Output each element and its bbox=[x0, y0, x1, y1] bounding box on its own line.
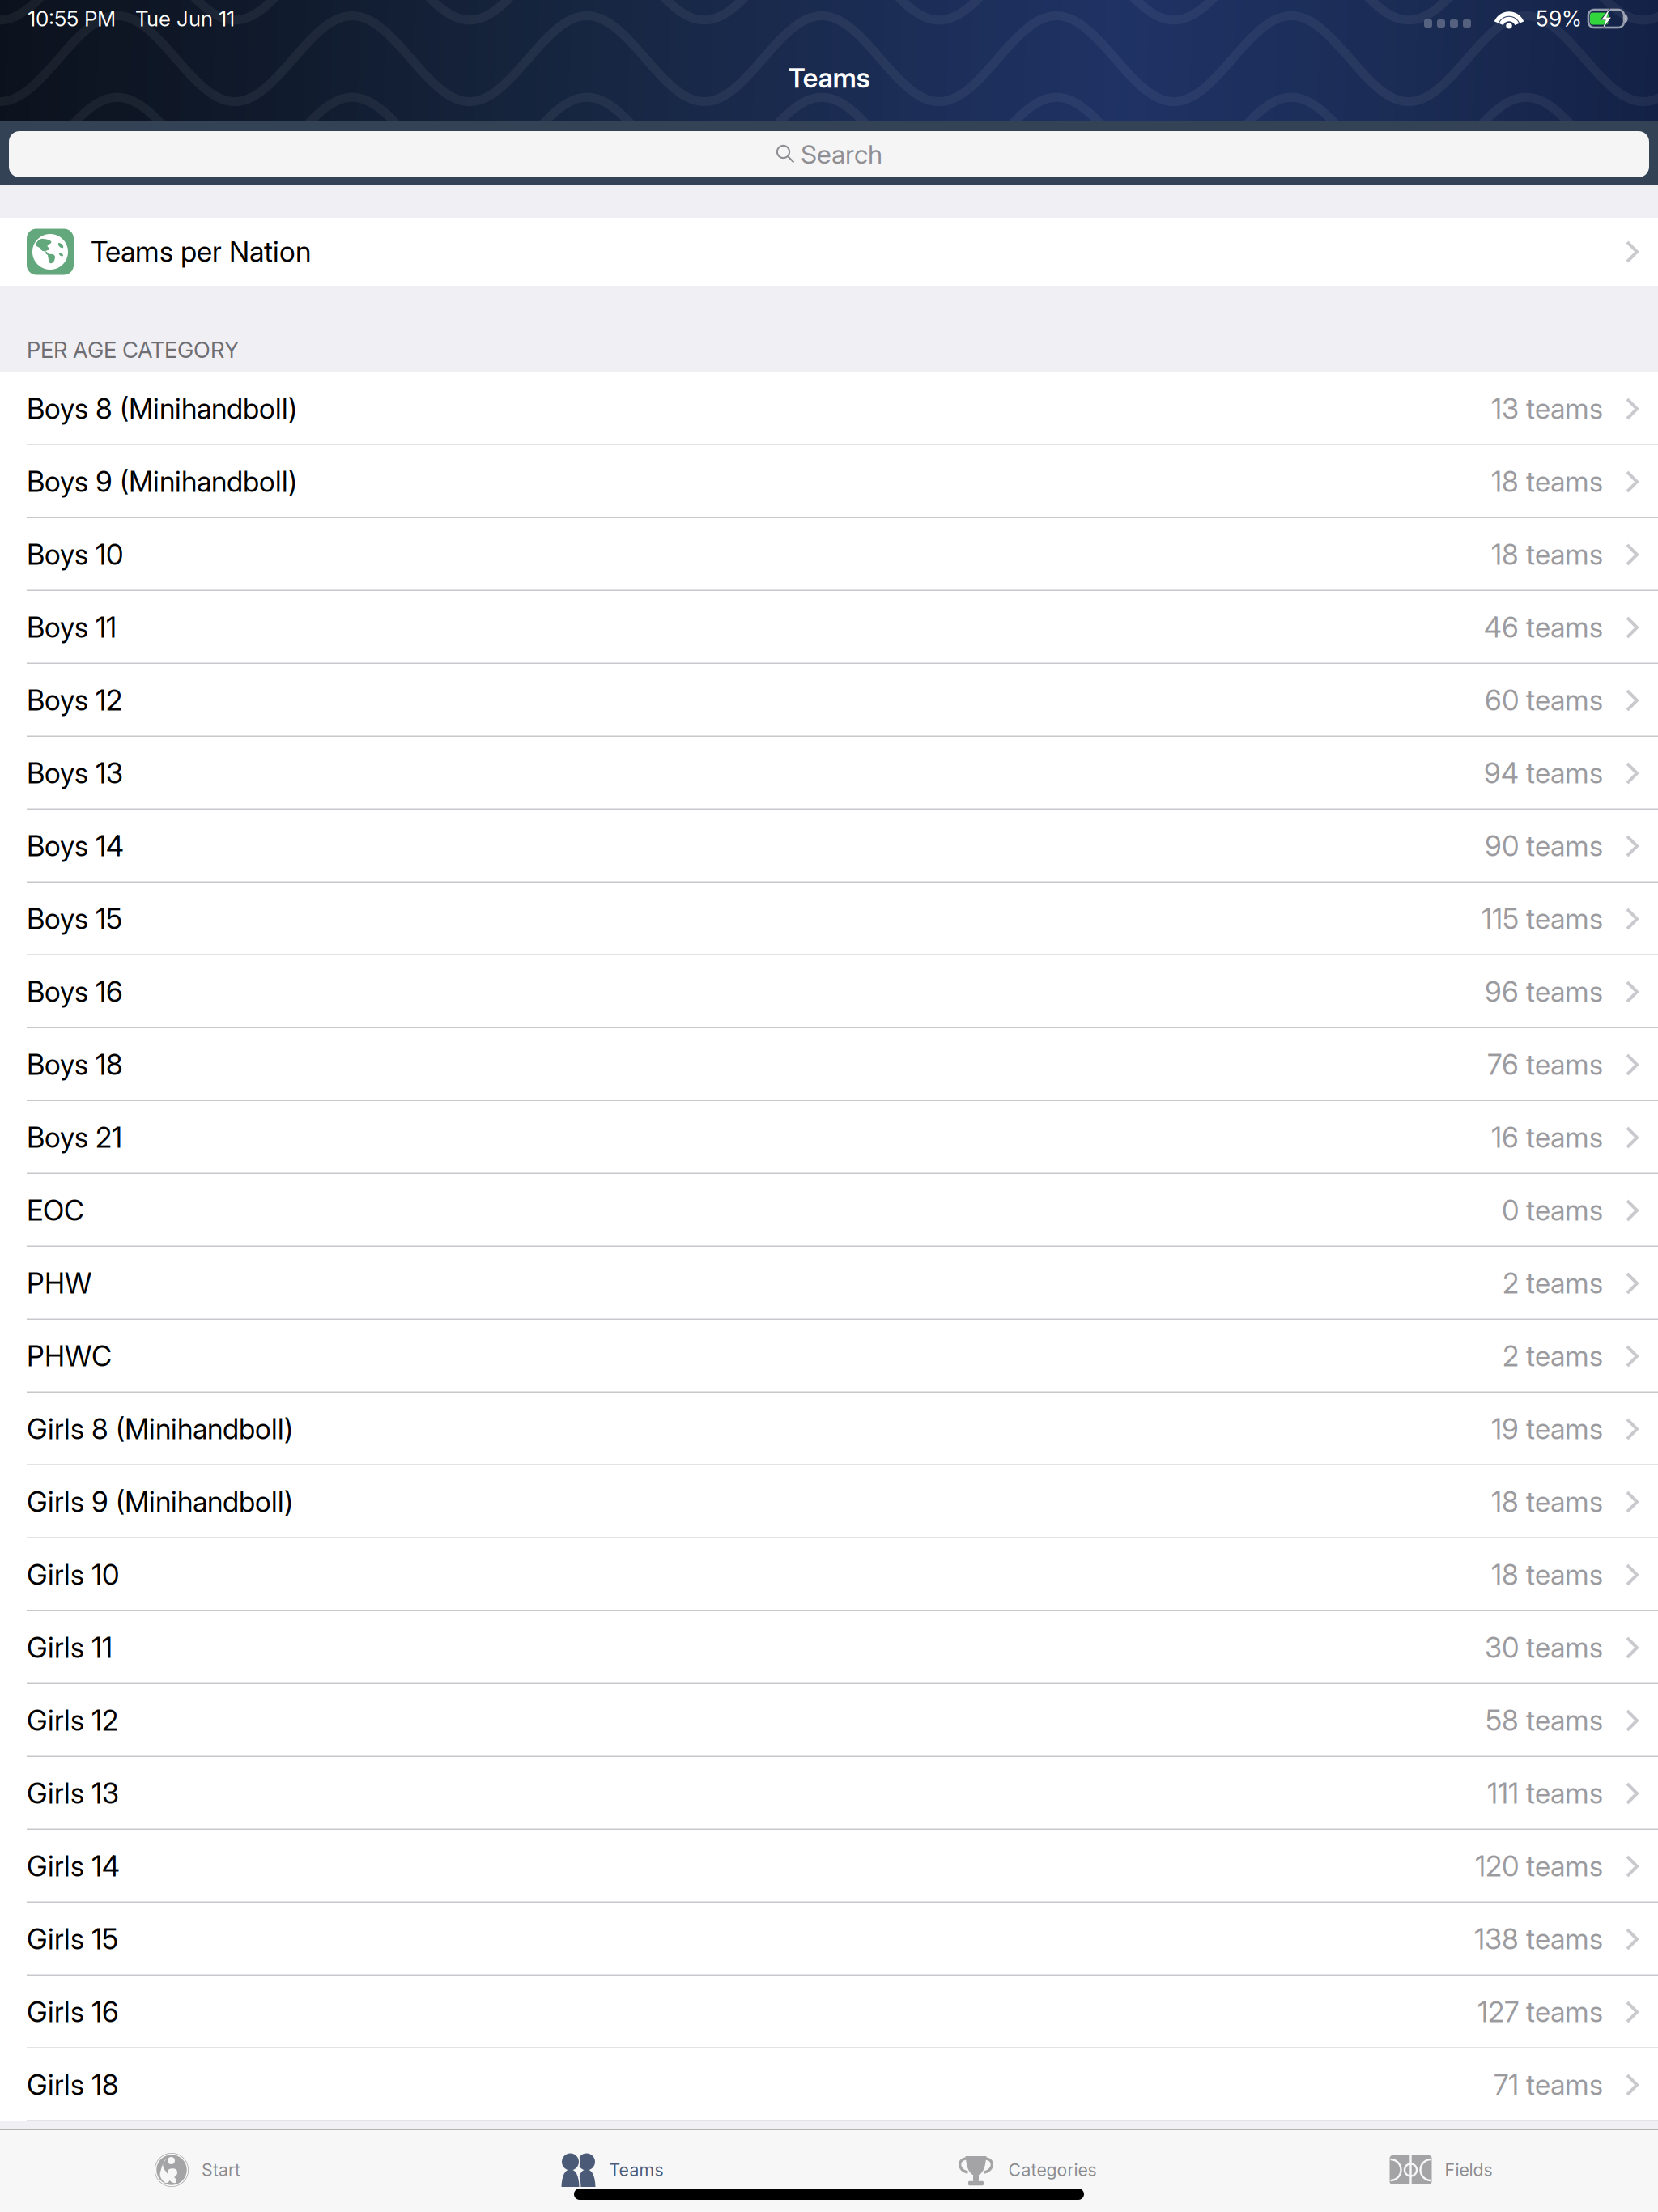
staticText: 58 teams bbox=[1486, 1704, 1603, 1737]
staticText: Categories bbox=[1008, 2159, 1097, 2180]
button[interactable]: Teams bbox=[405, 2129, 819, 2210]
staticText: PHWC bbox=[27, 1339, 112, 1373]
staticText: Girls 8 (Minihandboll) bbox=[27, 1412, 293, 1446]
button[interactable]: Boys 14 bbox=[0, 810, 1658, 883]
button[interactable]: Boys 13 bbox=[0, 737, 1658, 810]
staticText: Boys 13 bbox=[27, 756, 123, 790]
button[interactable]: Boys 11 bbox=[0, 591, 1658, 664]
staticText: 10:55 PM bbox=[28, 6, 116, 31]
button[interactable]: Boys 8 (Minihandboll) bbox=[0, 372, 1658, 445]
button[interactable]: Boys 10 bbox=[0, 518, 1658, 591]
button[interactable]: Boys 12 bbox=[0, 664, 1658, 737]
staticText: 0 teams bbox=[1502, 1193, 1603, 1227]
staticText: Girls 9 (Minihandboll) bbox=[27, 1485, 293, 1519]
staticText: Teams bbox=[609, 2159, 663, 2180]
staticText: Boys 12 bbox=[27, 683, 122, 717]
button[interactable]: Boys 9 (Minihandboll) bbox=[0, 445, 1658, 518]
staticText: 18 teams bbox=[1491, 1485, 1603, 1519]
staticText: 120 teams bbox=[1475, 1849, 1603, 1883]
button[interactable]: Categories bbox=[819, 2129, 1234, 2210]
staticText: 2 teams bbox=[1503, 1339, 1603, 1373]
button[interactable]: Girls 13 bbox=[0, 1757, 1658, 1830]
button[interactable]: Search bbox=[9, 131, 1649, 177]
staticText: PER AGE CATEGORY bbox=[27, 336, 239, 363]
staticText: Girls 11 bbox=[27, 1631, 113, 1665]
staticText: Teams per Nation bbox=[91, 235, 311, 269]
button[interactable]: Girls 16 bbox=[0, 1976, 1658, 2048]
staticText: 16 teams bbox=[1491, 1121, 1603, 1154]
staticText: 111 teams bbox=[1487, 1776, 1603, 1810]
staticText: Search bbox=[801, 139, 882, 170]
button[interactable]: Boys 18 bbox=[0, 1028, 1658, 1101]
staticText: 46 teams bbox=[1484, 610, 1603, 644]
staticText: Girls 12 bbox=[27, 1704, 118, 1737]
staticText: 127 teams bbox=[1477, 1995, 1603, 2029]
button[interactable]: PHW bbox=[0, 1247, 1658, 1320]
button[interactable]: Fields bbox=[1234, 2129, 1648, 2210]
staticText: Girls 14 bbox=[27, 1849, 120, 1883]
button[interactable]: Girls 18 bbox=[0, 2048, 1658, 2121]
staticText: Boys 18 bbox=[27, 1048, 123, 1082]
staticText: Girls 18 bbox=[27, 2068, 119, 2102]
staticText: Girls 15 bbox=[27, 1922, 118, 1956]
staticText: 90 teams bbox=[1485, 829, 1603, 863]
staticText: 76 teams bbox=[1487, 1048, 1603, 1082]
button[interactable]: Boys 15 bbox=[0, 883, 1658, 955]
staticText: 59% bbox=[1536, 6, 1582, 32]
staticText: Fields bbox=[1445, 2159, 1492, 2180]
staticText: Girls 13 bbox=[27, 1776, 119, 1810]
staticText: Boys 14 bbox=[27, 829, 124, 863]
staticText: 30 teams bbox=[1485, 1631, 1603, 1665]
button[interactable]: Girls 10 bbox=[0, 1538, 1658, 1611]
staticText: Boys 9 (Minihandboll) bbox=[27, 465, 297, 499]
staticText: Girls 10 bbox=[27, 1558, 119, 1592]
staticText: EOC bbox=[27, 1193, 84, 1227]
staticText: 138 teams bbox=[1474, 1922, 1603, 1956]
staticText: Start bbox=[202, 2159, 240, 2180]
staticText: 96 teams bbox=[1485, 975, 1603, 1009]
staticText: 94 teams bbox=[1484, 756, 1603, 790]
staticText: 18 teams bbox=[1491, 1558, 1603, 1592]
button[interactable]: EOC bbox=[0, 1174, 1658, 1247]
staticText: 2 teams bbox=[1503, 1266, 1603, 1300]
staticText: 18 teams bbox=[1491, 465, 1603, 499]
staticText: Boys 10 bbox=[27, 538, 123, 572]
staticText: Boys 21 bbox=[27, 1121, 122, 1154]
staticText: 18 teams bbox=[1491, 538, 1603, 572]
button[interactable]: Start bbox=[0, 2129, 405, 2210]
staticText: Tue Jun 11 bbox=[135, 6, 235, 31]
staticText: 19 teams bbox=[1491, 1412, 1603, 1446]
staticText: 60 teams bbox=[1485, 683, 1603, 717]
button[interactable]: Girls 11 bbox=[0, 1611, 1658, 1684]
button[interactable]: PHWC bbox=[0, 1320, 1658, 1393]
staticText: Boys 11 bbox=[27, 610, 117, 644]
button[interactable]: Girls 9 (Minihandboll) bbox=[0, 1465, 1658, 1538]
staticText: 13 teams bbox=[1491, 392, 1603, 426]
button[interactable]: Girls 15 bbox=[0, 1903, 1658, 1976]
staticText: Boys 15 bbox=[27, 902, 122, 936]
button[interactable]: Girls 12 bbox=[0, 1684, 1658, 1757]
button[interactable]: Boys 21 bbox=[0, 1101, 1658, 1174]
button[interactable]: Boys 16 bbox=[0, 955, 1658, 1028]
staticText: 71 teams bbox=[1494, 2068, 1603, 2102]
staticText: Boys 8 (Minihandboll) bbox=[27, 392, 297, 426]
button[interactable]: Girls 8 (Minihandboll) bbox=[0, 1393, 1658, 1465]
button[interactable]: Girls 14 bbox=[0, 1830, 1658, 1903]
staticText: PHW bbox=[27, 1266, 91, 1300]
button[interactable]: Teams per Nation bbox=[0, 218, 1658, 286]
staticText: 115 teams bbox=[1482, 902, 1603, 936]
staticText: Boys 16 bbox=[27, 975, 123, 1009]
staticText: Teams bbox=[788, 61, 870, 94]
staticText: Girls 16 bbox=[27, 1995, 119, 2029]
